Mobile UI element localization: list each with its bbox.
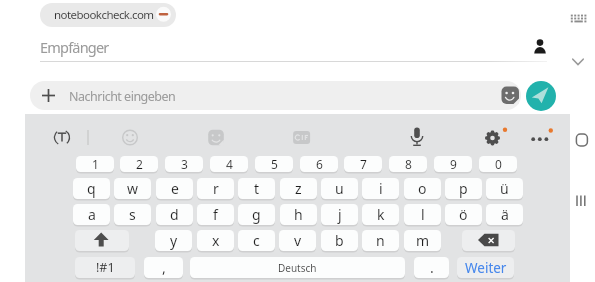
staticText: i bbox=[379, 179, 383, 198]
button[interactable] bbox=[528, 36, 550, 58]
button[interactable]: Weiter bbox=[457, 257, 514, 278]
staticText: w bbox=[127, 179, 139, 198]
button[interactable]: h bbox=[280, 204, 317, 225]
button[interactable]: 4 bbox=[210, 156, 248, 172]
button[interactable]: d bbox=[156, 204, 193, 225]
button[interactable]: n bbox=[362, 230, 399, 251]
button[interactable] bbox=[38, 84, 62, 108]
staticText: m bbox=[416, 231, 430, 250]
button[interactable]: 8 bbox=[389, 156, 427, 172]
button[interactable]: w bbox=[114, 178, 151, 199]
button[interactable]: c bbox=[238, 230, 275, 251]
button[interactable]: ä bbox=[486, 204, 523, 225]
button[interactable] bbox=[118, 125, 143, 150]
button[interactable] bbox=[50, 125, 75, 150]
button[interactable]: v bbox=[279, 230, 316, 251]
staticText: b bbox=[335, 231, 344, 250]
button[interactable]: ö bbox=[445, 204, 482, 225]
button[interactable]: b bbox=[321, 230, 358, 251]
staticText: Deutsch bbox=[278, 261, 317, 275]
button[interactable]: l bbox=[404, 204, 441, 225]
staticText: d bbox=[170, 205, 179, 224]
staticText: ö bbox=[459, 205, 468, 224]
button[interactable]: p bbox=[445, 178, 482, 199]
button[interactable]: i bbox=[362, 178, 399, 199]
button[interactable]: y bbox=[155, 230, 192, 251]
button[interactable]: e bbox=[156, 178, 193, 199]
button[interactable]: j bbox=[321, 204, 358, 225]
button[interactable] bbox=[566, 50, 590, 72]
button[interactable] bbox=[462, 230, 515, 251]
button[interactable] bbox=[480, 125, 505, 150]
button[interactable]: !#1 bbox=[75, 257, 135, 278]
staticText: ä bbox=[501, 205, 509, 224]
staticText: 0 bbox=[495, 156, 502, 172]
staticText: e bbox=[171, 179, 179, 198]
button[interactable]: x bbox=[197, 230, 234, 251]
staticText: r bbox=[213, 179, 219, 198]
staticText: h bbox=[294, 205, 303, 224]
staticText: s bbox=[129, 205, 136, 224]
staticText: j bbox=[338, 205, 342, 224]
button[interactable]: 0 bbox=[479, 156, 517, 172]
staticText: 6 bbox=[316, 156, 323, 172]
button[interactable] bbox=[564, 6, 592, 28]
staticText: notebookcheck.com bbox=[54, 7, 154, 23]
staticText: g bbox=[252, 205, 261, 224]
staticText: 2 bbox=[136, 156, 143, 172]
button[interactable]: 7 bbox=[344, 156, 382, 172]
button[interactable] bbox=[498, 83, 524, 109]
staticText: a bbox=[88, 205, 96, 224]
staticText: q bbox=[87, 179, 96, 198]
button[interactable]: k bbox=[362, 204, 399, 225]
button[interactable]: 1 bbox=[76, 156, 114, 172]
button[interactable] bbox=[527, 125, 555, 150]
button[interactable] bbox=[289, 125, 314, 150]
button[interactable] bbox=[204, 125, 229, 150]
staticText: !#1 bbox=[96, 259, 115, 276]
button[interactable]: s bbox=[114, 204, 151, 225]
staticText: t bbox=[254, 179, 260, 198]
staticText: ü bbox=[500, 179, 509, 198]
staticText: u bbox=[335, 179, 344, 198]
staticText: 3 bbox=[181, 156, 188, 172]
staticText: 4 bbox=[226, 156, 233, 172]
button[interactable]: t bbox=[238, 178, 275, 199]
button[interactable]: ü bbox=[486, 178, 523, 199]
button[interactable]: f bbox=[197, 204, 234, 225]
button[interactable]: g bbox=[238, 204, 275, 225]
button[interactable]: u bbox=[321, 178, 358, 199]
staticText: 5 bbox=[271, 156, 278, 172]
button[interactable] bbox=[405, 125, 430, 150]
button[interactable]: o bbox=[404, 178, 441, 199]
button[interactable]: r bbox=[197, 178, 234, 199]
button[interactable] bbox=[572, 130, 592, 150]
button[interactable]: z bbox=[280, 178, 317, 199]
button[interactable]: m bbox=[404, 230, 441, 251]
button[interactable]: 9 bbox=[434, 156, 472, 172]
staticText: c bbox=[253, 231, 260, 250]
button[interactable] bbox=[572, 192, 592, 212]
button[interactable]: 5 bbox=[255, 156, 293, 172]
button[interactable]: q bbox=[73, 178, 110, 199]
button[interactable]: notebookcheck.com bbox=[40, 3, 176, 27]
staticText: 7 bbox=[360, 156, 367, 172]
button[interactable]: a bbox=[73, 204, 110, 225]
button[interactable]: Deutsch bbox=[190, 257, 405, 278]
staticText: . bbox=[430, 258, 434, 277]
button[interactable] bbox=[526, 81, 556, 111]
button[interactable]: , bbox=[144, 257, 183, 278]
button[interactable] bbox=[153, 4, 173, 24]
button[interactable] bbox=[75, 230, 129, 251]
button[interactable]: 3 bbox=[165, 156, 203, 172]
staticText: n bbox=[376, 231, 385, 250]
staticText: o bbox=[418, 179, 427, 198]
staticText: , bbox=[162, 258, 166, 277]
staticText: v bbox=[294, 231, 302, 250]
button[interactable]: 6 bbox=[300, 156, 338, 172]
button[interactable] bbox=[30, 81, 521, 110]
button[interactable]: 2 bbox=[120, 156, 158, 172]
staticText: y bbox=[170, 231, 178, 250]
staticText: x bbox=[212, 231, 220, 250]
button[interactable]: . bbox=[414, 257, 449, 278]
